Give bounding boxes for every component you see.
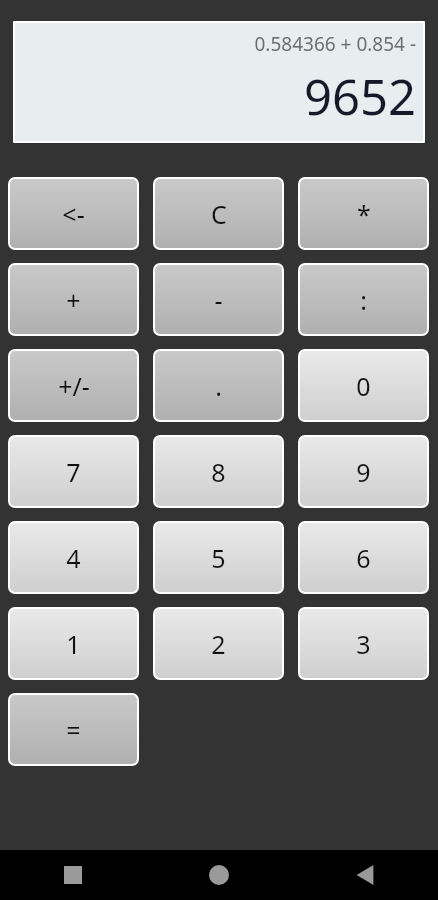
- staticText: :: [360, 283, 367, 317]
- staticText: 2: [211, 627, 226, 661]
- button[interactable]: 8: [155, 437, 282, 506]
- staticText: 9652: [303, 63, 416, 130]
- staticText: 8: [211, 455, 226, 489]
- button[interactable]: :: [300, 265, 427, 334]
- button[interactable]: -: [155, 265, 282, 334]
- button[interactable]: <-: [10, 179, 137, 248]
- button[interactable]: Back: [292, 850, 438, 900]
- button[interactable]: C: [155, 179, 282, 248]
- button[interactable]: 3: [300, 609, 427, 678]
- button[interactable]: *: [300, 179, 427, 248]
- button[interactable]: +/-: [10, 351, 137, 420]
- staticText: +/-: [58, 369, 90, 403]
- button[interactable]: .: [155, 351, 282, 420]
- button[interactable]: Recent apps: [0, 850, 146, 900]
- button[interactable]: 9: [300, 437, 427, 506]
- staticText: .: [215, 369, 222, 403]
- staticText: C: [211, 197, 227, 231]
- staticText: 9: [356, 455, 371, 489]
- staticText: 3: [356, 627, 371, 661]
- button[interactable]: 4: [10, 523, 137, 592]
- staticText: 7: [66, 455, 81, 489]
- button[interactable]: 0.584366 + 0.854 -: [15, 23, 423, 141]
- staticText: 4: [66, 541, 81, 575]
- staticText: -: [214, 283, 223, 317]
- button[interactable]: 2: [155, 609, 282, 678]
- button[interactable]: =: [10, 695, 137, 764]
- staticText: <-: [62, 197, 85, 231]
- staticText: 1: [66, 627, 81, 661]
- button[interactable]: 1: [10, 609, 137, 678]
- staticText: =: [66, 713, 81, 747]
- button[interactable]: Home: [146, 850, 292, 900]
- staticText: +: [66, 283, 81, 317]
- button[interactable]: 5: [155, 523, 282, 592]
- staticText: 6: [356, 541, 371, 575]
- staticText: *: [357, 197, 371, 231]
- staticText: 0.584366 + 0.854 -: [254, 31, 416, 57]
- button[interactable]: 7: [10, 437, 137, 506]
- staticText: 5: [211, 541, 226, 575]
- button[interactable]: +: [10, 265, 137, 334]
- button[interactable]: 0: [300, 351, 427, 420]
- staticText: 0: [356, 369, 371, 403]
- button[interactable]: 6: [300, 523, 427, 592]
